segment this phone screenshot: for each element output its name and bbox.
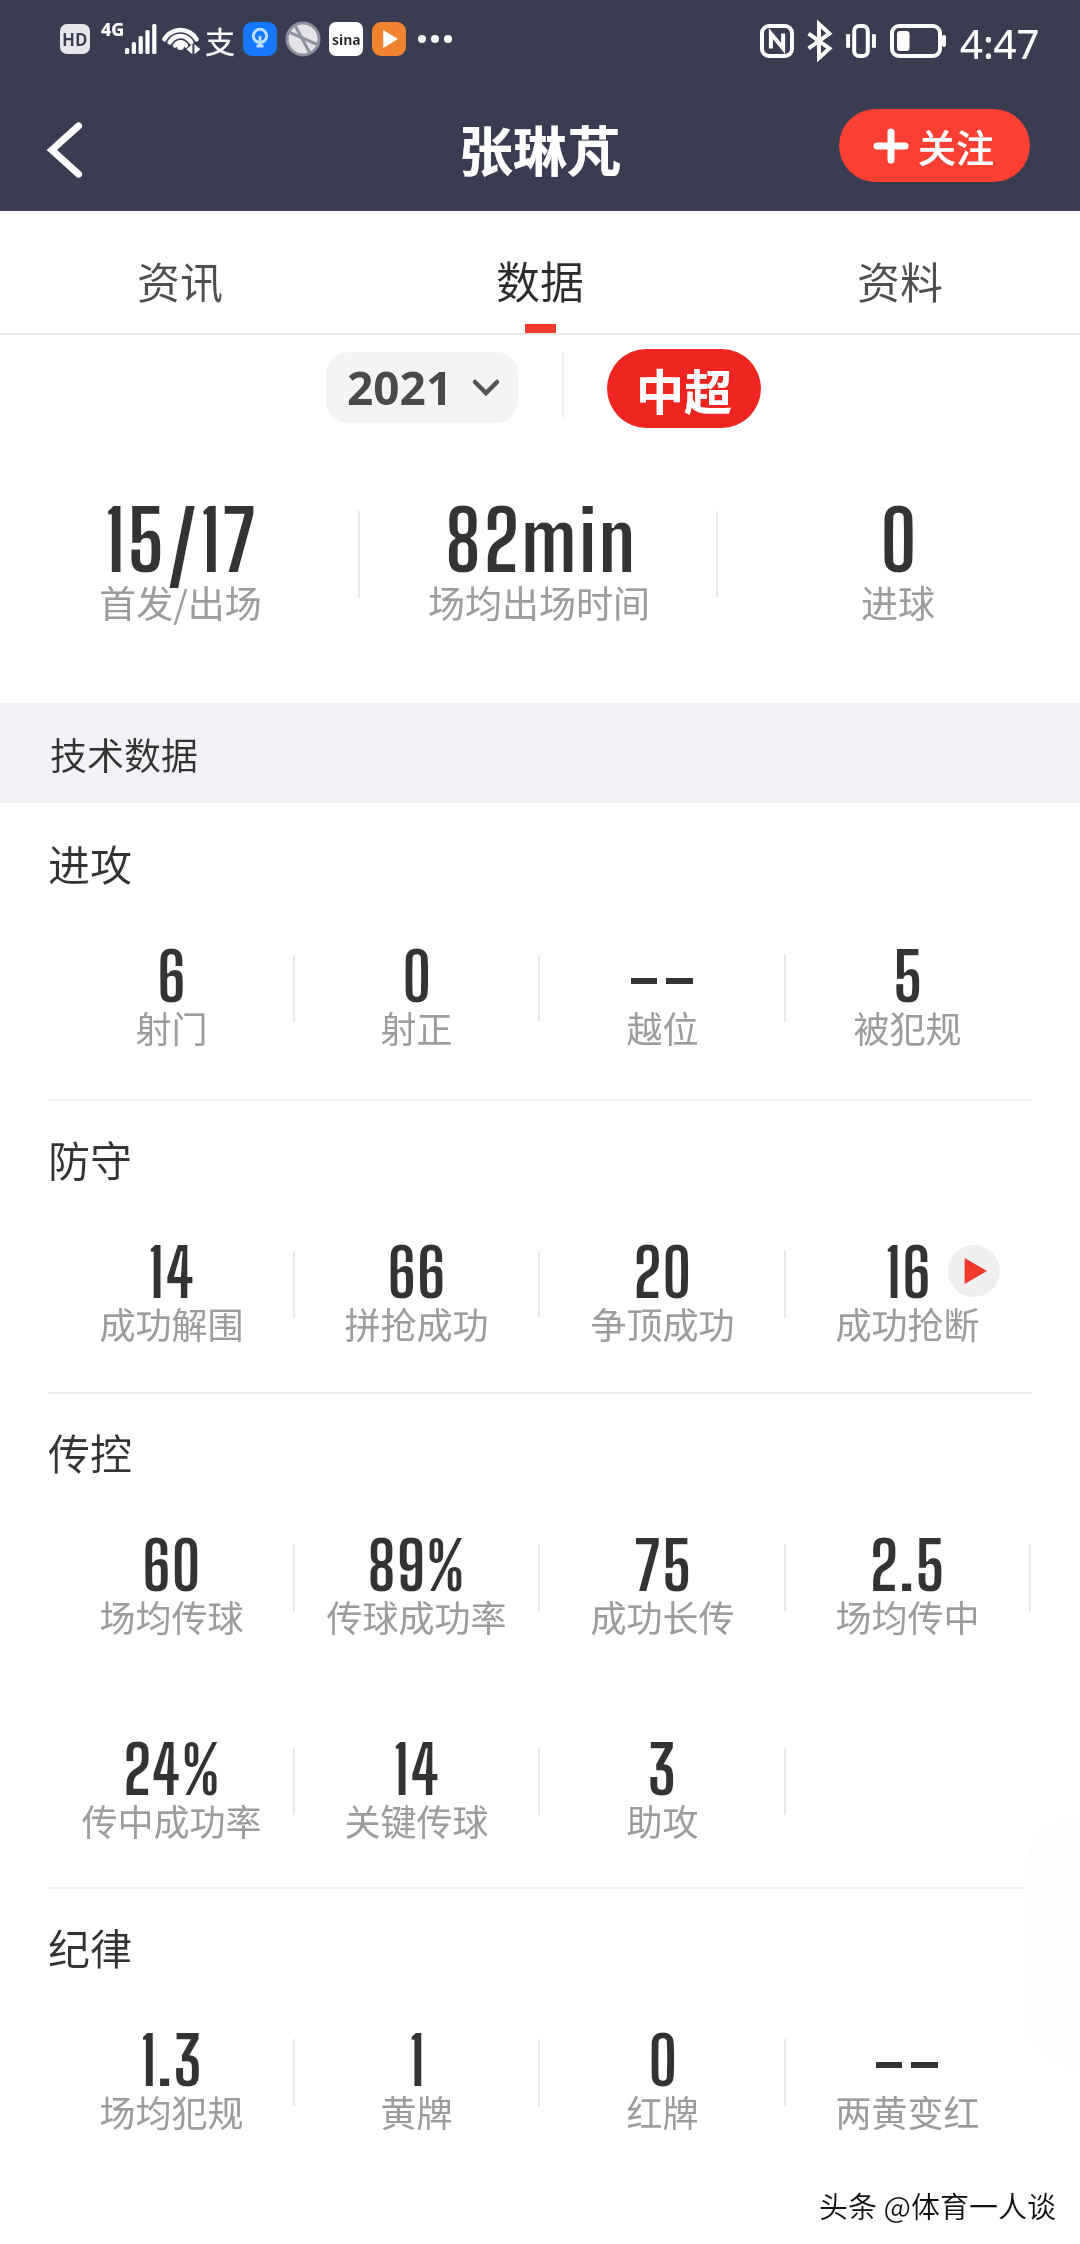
staticText: 两黄变红: [835, 2085, 980, 2137]
button[interactable]: 越位 --: [539, 943, 785, 1043]
staticText: 中超: [636, 354, 733, 424]
staticText: 传中成功率: [81, 1794, 262, 1846]
staticText: 14: [148, 1234, 196, 1312]
staticText: 黄牌: [380, 2085, 453, 2137]
button[interactable]: 传中成功率 24%: [48, 1736, 294, 1836]
staticText: 1.3: [140, 2022, 204, 2100]
staticText: 6: [157, 938, 187, 1016]
staticText: 技术数据: [50, 727, 198, 781]
staticText: 进球: [861, 575, 935, 629]
button[interactable]: 成功抢断 16: [785, 1239, 1031, 1339]
button[interactable]: 2021: [326, 352, 518, 423]
button[interactable]: Play video: [948, 1245, 1000, 1297]
staticText: 75: [634, 1527, 693, 1605]
button[interactable]: [720, 211, 1080, 333]
staticText: 张琳芃: [459, 109, 621, 187]
button[interactable]: 射正 0: [294, 943, 540, 1043]
staticText: HD: [62, 28, 88, 51]
staticText: 成功抢断: [835, 1297, 980, 1349]
staticText: 4G: [101, 17, 125, 42]
button[interactable]: 场均犯规 1.3: [48, 2027, 294, 2127]
button[interactable]: 成功解围 14: [48, 1239, 294, 1339]
staticText: 15/17: [105, 491, 259, 589]
button[interactable]: 被犯规 5: [785, 943, 1031, 1043]
button[interactable]: 首发/出场 15/17: [1, 490, 359, 625]
staticText: 20: [633, 1234, 693, 1312]
staticText: 防守: [48, 1128, 133, 1189]
button[interactable]: 关注: [839, 109, 1030, 182]
staticText: 红牌: [626, 2085, 699, 2137]
staticText: 拼抢成功: [344, 1297, 489, 1349]
button[interactable]: Back: [10, 92, 114, 208]
staticText: 2.5: [870, 1527, 946, 1605]
staticText: 66: [387, 1234, 447, 1312]
staticText: 成功长传: [590, 1590, 735, 1642]
button[interactable]: 中超: [607, 349, 761, 428]
staticText: 资讯: [137, 249, 223, 311]
staticText: 4:47: [960, 16, 1040, 66]
button[interactable]: 关键传球 14: [294, 1736, 540, 1836]
button[interactable]: 两黄变红 --: [785, 2027, 1031, 2127]
staticText: 数据: [496, 248, 584, 312]
staticText: 助攻: [626, 1794, 699, 1846]
staticText: 0: [648, 2022, 679, 2100]
staticText: 越位: [626, 1001, 699, 1053]
staticText: 纪律: [48, 1916, 133, 1977]
staticText: 被犯规: [853, 1001, 962, 1053]
staticText: 争顶成功: [590, 1297, 735, 1349]
staticText: 传控: [48, 1421, 133, 1482]
staticText: 场均传中: [835, 1590, 980, 1642]
staticText: 2021: [347, 356, 453, 419]
button[interactable]: [0, 211, 360, 333]
staticText: 首发/出场: [99, 575, 262, 629]
staticText: 射门: [135, 1001, 208, 1053]
staticText: 进攻: [48, 832, 133, 893]
staticText: 0: [880, 491, 920, 589]
staticText: 成功解围: [99, 1297, 244, 1349]
button[interactable]: 传球成功率 89%: [294, 1532, 540, 1632]
button[interactable]: 红牌 0: [539, 2027, 785, 2127]
staticText: 82min: [445, 491, 638, 589]
staticText: 支: [205, 18, 235, 61]
button[interactable]: 场均传中 2.5: [785, 1532, 1031, 1632]
button[interactable]: 进球 0: [719, 490, 1077, 625]
staticText: 1: [409, 2022, 426, 2100]
staticText: 传球成功率: [326, 1590, 507, 1642]
staticText: 3: [648, 1731, 678, 1809]
staticText: 场均犯规: [99, 2085, 244, 2137]
staticText: 16: [885, 1234, 932, 1312]
staticText: 5: [893, 938, 924, 1016]
staticText: 60: [142, 1527, 202, 1605]
staticText: 0: [402, 938, 433, 1016]
staticText: 关键传球: [344, 1794, 489, 1846]
button[interactable]: 成功长传 75: [539, 1532, 785, 1632]
button[interactable]: 场均传球 60: [48, 1532, 294, 1632]
staticText: 场均传球: [99, 1590, 244, 1642]
button[interactable]: 场均出场时间 82min: [360, 490, 718, 625]
staticText: 场均出场时间: [428, 575, 650, 629]
button[interactable]: 助攻 3: [539, 1736, 785, 1836]
staticText: 资料: [857, 249, 943, 311]
button[interactable]: [360, 211, 720, 333]
staticText: 射正: [380, 1001, 453, 1053]
staticText: 24%: [123, 1731, 222, 1809]
staticText: 14: [393, 1731, 441, 1809]
button[interactable]: 射门 6: [48, 943, 294, 1043]
staticText: 关注: [918, 118, 995, 173]
staticText: 头条 @体育一人谈: [819, 2184, 1056, 2226]
button[interactable]: 拼抢成功 66: [294, 1239, 540, 1339]
staticText: 89%: [367, 1527, 467, 1605]
staticText: sina: [332, 30, 361, 49]
button[interactable]: 争顶成功 20: [539, 1239, 785, 1339]
button[interactable]: 黄牌 1: [294, 2027, 540, 2127]
